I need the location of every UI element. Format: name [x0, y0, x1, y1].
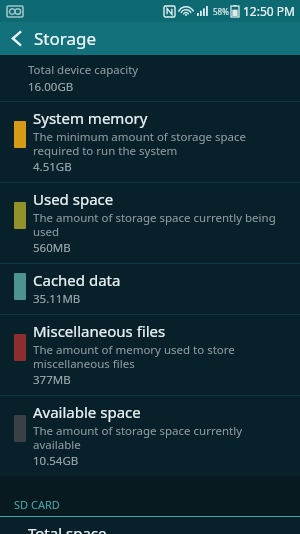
- button[interactable]: Cached data: [0, 264, 300, 314]
- staticText: 10.54GB: [33, 453, 79, 469]
- staticText: 58%: [213, 6, 229, 17]
- button[interactable]: Total device capacity: [0, 55, 300, 101]
- button[interactable]: System memory: [0, 102, 300, 182]
- staticText: 12:50 PM: [243, 3, 295, 19]
- staticText: 4.51GB: [33, 159, 72, 175]
- staticText: Storage: [34, 27, 97, 50]
- staticText: 560MB: [33, 240, 71, 256]
- staticText: Total space: [28, 523, 107, 534]
- staticText: The amount of memory used to store misce…: [33, 342, 235, 371]
- staticText: SD CARD: [14, 497, 60, 512]
- button[interactable]: Available space: [0, 396, 300, 476]
- staticText: 35.11MB: [33, 291, 81, 307]
- staticText: 377MB: [33, 372, 71, 388]
- staticText: Total device capacity: [28, 62, 139, 78]
- staticText: Cached data: [33, 270, 121, 290]
- button[interactable]: Navigate up from Storage: [0, 22, 300, 55]
- staticText: Used space: [33, 189, 114, 209]
- staticText: 16.00GB: [28, 79, 74, 95]
- staticText: The amount of storage space currently av…: [33, 423, 243, 452]
- staticText: The amount of storage space currently be…: [33, 210, 276, 239]
- button[interactable]: Used space: [0, 183, 300, 263]
- staticText: Miscellaneous files: [33, 321, 166, 341]
- staticText: Available space: [33, 402, 141, 422]
- staticText: System memory: [33, 108, 148, 128]
- staticText: The minimum amount of storage space requ…: [33, 129, 246, 158]
- button[interactable]: Total space: [0, 517, 300, 534]
- button[interactable]: Miscellaneous files: [0, 315, 300, 395]
